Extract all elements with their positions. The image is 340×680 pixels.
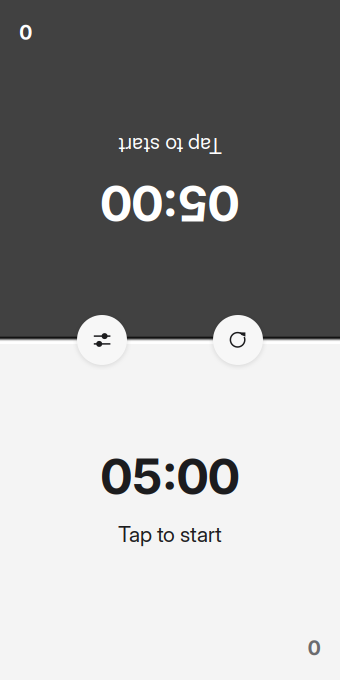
button[interactable]: Reset bbox=[213, 315, 263, 365]
staticText: Tap to start bbox=[118, 181, 222, 207]
staticText: 05:00 bbox=[100, 447, 240, 506]
button[interactable]: Settings bbox=[77, 315, 127, 365]
staticText: Tap to start bbox=[118, 521, 222, 547]
staticText: 0 bbox=[307, 636, 320, 660]
staticText: 05:00 bbox=[100, 107, 240, 166]
